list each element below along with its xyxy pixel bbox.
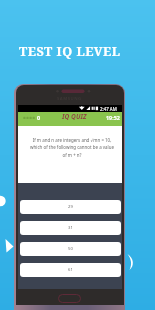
staticText: 29 (68, 204, 73, 210)
staticText: 31 (68, 225, 73, 231)
staticText: IQ QUIZ (62, 112, 87, 121)
staticText: 50 (68, 246, 73, 252)
staticText: TEST IQ LEVEL (19, 43, 121, 60)
staticText: 19:52 (106, 114, 120, 121)
button[interactable]: Home (58, 294, 81, 303)
staticText: 2:47 AM (100, 106, 117, 112)
staticText: 0 (37, 114, 41, 121)
staticText: If m and n are integers and √mn = 10, wh… (30, 137, 114, 158)
button[interactable]: 61 (20, 263, 121, 277)
staticText: SAMSUNG (57, 96, 82, 102)
button[interactable]: 31 (20, 221, 121, 235)
button[interactable]: 50 (20, 242, 121, 256)
button[interactable]: 29 (20, 200, 121, 214)
staticText: 61 (68, 267, 73, 273)
